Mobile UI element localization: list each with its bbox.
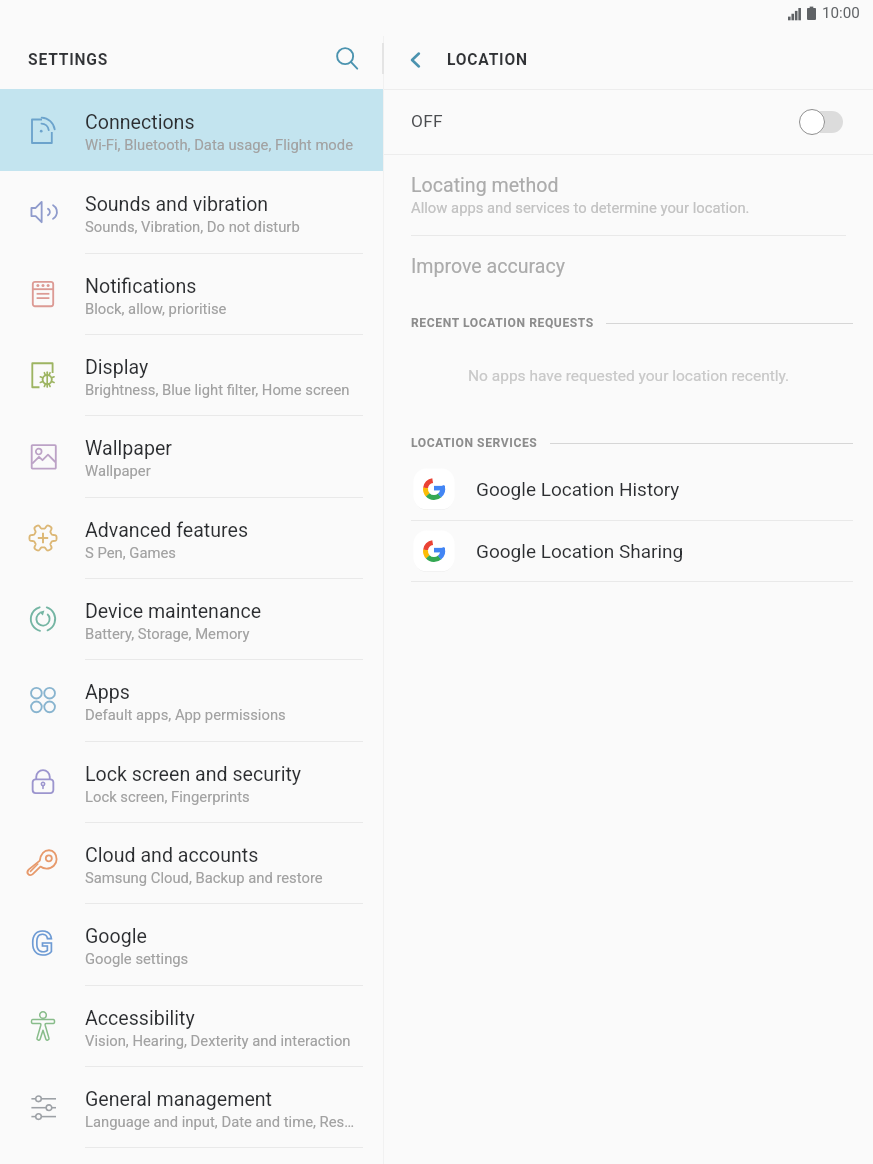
staticText: Vision, Hearing, Dexterity and interacti… [85,1032,351,1049]
button[interactable]: Locating method [384,155,873,235]
button[interactable]: Google Location History [384,457,873,520]
staticText: Improve accuracy [411,255,566,278]
button[interactable]: Display [0,334,383,415]
button[interactable]: Lock screen and security [0,741,383,822]
button[interactable]: General management [0,1066,383,1147]
staticText: Advanced features [85,519,249,542]
staticText: Google settings [85,950,189,967]
button[interactable]: Google Location Sharing [384,521,873,581]
staticText: Display [85,356,149,379]
button[interactable]: Cloud and accounts [0,822,383,903]
staticText: Google Location Sharing [476,540,684,562]
staticText: General management [85,1088,273,1111]
staticText: Sounds, Vibration, Do not disturb [85,218,300,235]
button[interactable]: Search [328,39,368,79]
staticText: SETTINGS [28,51,109,69]
staticText: No apps have requested your location rec… [468,367,790,385]
button[interactable]: G [0,903,383,985]
button[interactable]: OFF [384,90,873,154]
staticText: 10:00 [822,4,860,22]
staticText: Wi-Fi, Bluetooth, Data usage, Flight mod… [85,136,353,153]
staticText: Lock screen and security [85,763,302,786]
button[interactable]: Wallpaper [0,415,383,497]
staticText: Lock screen, Fingerprints [85,788,250,805]
button[interactable]: Advanced features [0,497,383,578]
staticText: Brightness, Blue light filter, Home scre… [85,381,350,398]
staticText: Wallpaper [85,437,172,460]
staticText: Allow apps and services to determine you… [411,199,750,216]
staticText: Cloud and accounts [85,844,259,867]
staticText: Language and input, Date and time, Res… [85,1113,355,1130]
staticText: G [31,924,54,963]
staticText: Samsung Cloud, Backup and restore [85,869,323,886]
button[interactable]: Improve accuracy [384,236,873,296]
staticText: Connections [85,111,195,134]
staticText: Wallpaper [85,462,151,479]
staticText: LOCATION SERVICES [411,436,538,450]
button[interactable]: Connections [0,89,383,171]
button[interactable]: Sounds and vibration [0,171,383,253]
staticText: Device maintenance [85,600,262,623]
staticText: S Pen, Games [85,544,176,561]
staticText: Block, allow, prioritise [85,300,227,317]
staticText: Google Location History [476,478,680,500]
staticText: Google [85,925,147,948]
staticText: RECENT LOCATION REQUESTS [411,316,594,330]
staticText: Locating method [411,174,559,197]
staticText: LOCATION [447,51,528,69]
button[interactable]: Apps [0,659,383,741]
button[interactable]: Device maintenance [0,578,383,659]
staticText: Notifications [85,275,197,298]
staticText: Sounds and vibration [85,193,269,216]
button[interactable]: Notifications [0,253,383,334]
staticText: Default apps, App permissions [85,706,286,723]
button[interactable]: Accessibility [0,985,383,1066]
staticText: Battery, Storage, Memory [85,625,250,642]
button[interactable]: Back [395,39,437,81]
staticText: Apps [85,681,130,704]
staticText: Accessibility [85,1007,195,1030]
staticText: OFF [411,111,443,131]
